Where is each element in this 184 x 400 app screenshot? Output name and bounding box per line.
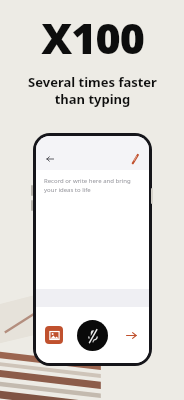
button[interactable]: Next bbox=[122, 326, 140, 344]
staticText: Several times faster than typing bbox=[28, 73, 157, 108]
staticText: Record or write here and bring your idea… bbox=[44, 177, 141, 194]
button[interactable]: Edit bbox=[128, 152, 142, 166]
button[interactable]: Record or write here and bring your idea… bbox=[36, 170, 149, 289]
button[interactable]: Add image bbox=[45, 326, 63, 344]
staticText: X100 bbox=[41, 8, 144, 67]
button[interactable]: Microphone muted bbox=[77, 320, 108, 351]
button[interactable]: Back bbox=[43, 152, 57, 166]
